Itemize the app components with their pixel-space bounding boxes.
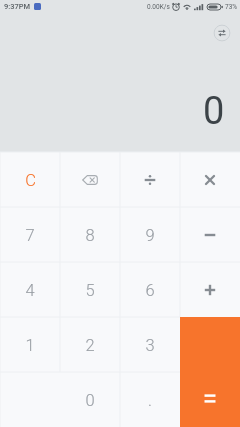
button[interactable]: 1: [0, 317, 60, 372]
button[interactable]: 3: [120, 317, 180, 372]
staticText: 6: [145, 281, 155, 300]
button[interactable]: Minus: [180, 207, 240, 262]
staticText: 0: [203, 89, 225, 134]
staticText: 9:37PM: [4, 2, 31, 11]
staticText: 9: [145, 226, 155, 245]
button[interactable]: Multiply: [180, 152, 240, 207]
staticText: .: [148, 391, 152, 410]
staticText: 0: [85, 391, 95, 410]
staticText: 3: [145, 336, 155, 355]
staticText: 0.00K/s: [147, 3, 170, 11]
button[interactable]: 2: [60, 317, 120, 372]
button[interactable]: 5: [60, 262, 120, 317]
staticText: 4: [25, 281, 35, 300]
staticText: 8: [85, 226, 95, 245]
staticText: 7: [25, 226, 35, 245]
staticText: 73%: [225, 3, 238, 11]
button[interactable]: 7: [0, 207, 60, 262]
staticText: C: [25, 171, 36, 190]
button[interactable]: 4: [0, 262, 60, 317]
button[interactable]: Backspace: [60, 152, 120, 207]
button[interactable]: Unit converter: [208, 19, 236, 47]
button[interactable]: 6: [120, 262, 180, 317]
button[interactable]: Equals: [180, 317, 240, 427]
staticText: 1: [25, 336, 35, 355]
button[interactable]: 8: [60, 207, 120, 262]
button[interactable]: 0: [60, 372, 120, 427]
staticText: 2: [85, 336, 95, 355]
button[interactable]: Divide: [120, 152, 180, 207]
button[interactable]: Plus: [180, 262, 240, 317]
button[interactable]: 9: [120, 207, 180, 262]
staticText: 5: [85, 281, 95, 300]
button[interactable]: C: [0, 152, 60, 207]
